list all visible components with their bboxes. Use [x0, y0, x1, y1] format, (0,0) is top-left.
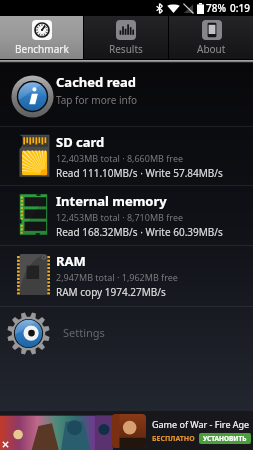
staticText: Results [109, 42, 143, 56]
staticText: Cached read [56, 73, 136, 91]
button[interactable]: Close ad [0, 411, 253, 450]
button[interactable]: RAM [0, 246, 253, 306]
button[interactable]: SD card [0, 127, 253, 185]
staticText: Game of War - Fire Age [152, 418, 250, 430]
staticText: RAM copy 1974.27MB/s [56, 285, 166, 299]
staticText: Settings [63, 325, 105, 340]
staticText: УСТАНОВИТЬ [203, 434, 247, 443]
staticText: 12,403MB total · 8,660MB free [56, 152, 184, 164]
button[interactable]: Close ad [1, 440, 10, 449]
button[interactable]: Benchmark [0, 16, 83, 59]
staticText: 78% [206, 1, 226, 15]
staticText: 0:19 [230, 1, 250, 15]
staticText: Tap for more info [56, 93, 138, 107]
button[interactable]: Settings [0, 307, 253, 357]
button[interactable]: Cached read [0, 63, 253, 126]
staticText: 2,947MB total · 1,962MB free [56, 271, 178, 283]
button[interactable]: УСТАНОВИТЬ [199, 433, 251, 444]
button[interactable]: About [169, 16, 253, 59]
staticText: SD card [56, 133, 105, 151]
button[interactable]: Internal memory [0, 186, 253, 245]
staticText: БЕСПЛАТНО [152, 434, 195, 444]
staticText: RAM [56, 252, 86, 270]
staticText: 12,453MB total · 8,710MB free [56, 211, 184, 223]
button[interactable]: Results [84, 16, 168, 59]
staticText: About [197, 42, 226, 56]
staticText: Read 168.32MB/s · Write 60.39MB/s [56, 225, 223, 239]
staticText: Read 111.10MB/s · Write 57.84MB/s [56, 166, 223, 180]
staticText: Benchmark [15, 42, 69, 56]
staticText: Internal memory [56, 192, 167, 210]
